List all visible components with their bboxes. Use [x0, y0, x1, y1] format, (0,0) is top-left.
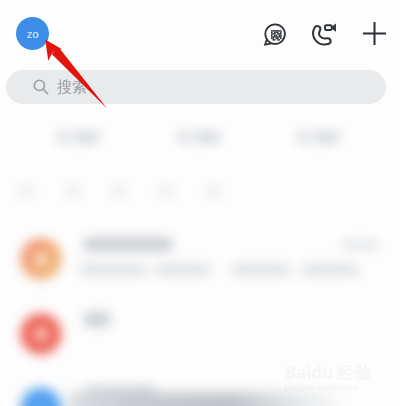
- button[interactable]: [297, 131, 339, 143]
- button[interactable]: [178, 131, 220, 143]
- staticText: jingyan.baidu.com: [285, 381, 359, 392]
- button[interactable]: Scan QR code: [256, 14, 294, 52]
- button[interactable]: [0, 221, 400, 297]
- button[interactable]: Add: [355, 14, 393, 52]
- button[interactable]: [0, 370, 400, 406]
- staticText: zo: [27, 26, 39, 41]
- button[interactable]: Video call: [306, 14, 344, 52]
- button[interactable]: Profile: [16, 17, 49, 50]
- button[interactable]: 搜索: [6, 70, 386, 104]
- button[interactable]: [57, 131, 99, 143]
- staticText: 搜索: [57, 78, 87, 97]
- button[interactable]: [0, 296, 400, 372]
